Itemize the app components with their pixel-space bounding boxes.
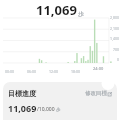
staticText: 0 [116,57,119,62]
staticText: 目標進度 [8,89,36,98]
button[interactable] [3,82,117,120]
other: Edit goal [108,92,112,96]
staticText: 11,069 [36,1,77,19]
staticText: 12:00 [49,69,58,74]
staticText: 1,400 [110,36,119,41]
staticText: 24:00 [93,66,104,71]
staticText: 修改目標 [85,90,107,97]
staticText: 2,800 [110,15,119,20]
staticText: 700 [112,47,119,52]
staticText: 歩 [56,107,61,113]
staticText: 00:00 [5,69,14,74]
staticText: /10,000 [37,106,55,113]
staticText: 18:00 [71,69,80,74]
button[interactable]: 修改目標 [84,89,113,98]
staticText: 11,069 [8,102,37,114]
staticText: 06:00 [27,69,36,74]
staticText: 2,100 [110,26,119,31]
staticText: 歩 [78,10,84,18]
